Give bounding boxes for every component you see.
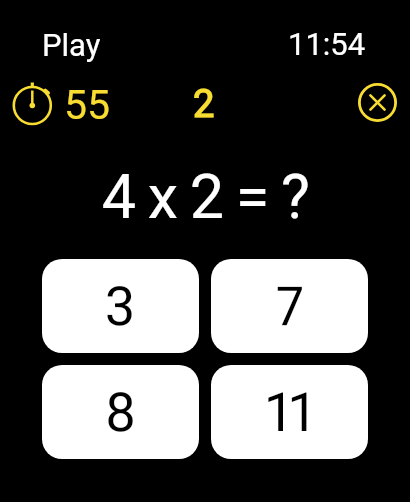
staticText: 11 — [266, 381, 313, 444]
button[interactable]: 7 — [211, 259, 368, 353]
staticText: 8 — [105, 381, 137, 444]
button[interactable]: 8 — [42, 365, 199, 459]
button[interactable]: Timer — [12, 82, 58, 128]
staticText: Play — [42, 27, 101, 63]
staticText: 4 x 2 = ? — [0, 161, 410, 232]
button[interactable]: Close — [358, 83, 397, 122]
staticText: 3 — [105, 275, 136, 338]
staticText: 2 — [193, 82, 215, 127]
staticText: 55 — [64, 81, 111, 129]
staticText: 11:54 — [288, 26, 366, 62]
staticText: 7 — [276, 275, 304, 338]
button[interactable]: 3 — [42, 259, 199, 353]
button[interactable]: 11 — [211, 365, 368, 459]
